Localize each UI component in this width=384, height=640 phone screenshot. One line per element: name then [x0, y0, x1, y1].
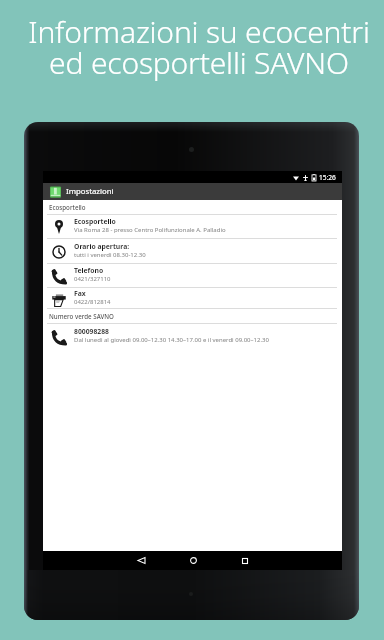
button[interactable]: Orario apertura:	[43, 239, 342, 264]
staticText: 0421/327110	[74, 275, 111, 283]
staticText: Dal lunedì al giovedì 09.00–12.30 14.30–…	[74, 336, 269, 344]
button[interactable]: Recent apps	[232, 551, 258, 570]
button[interactable]: Home	[180, 551, 206, 570]
button[interactable]: Fax	[43, 288, 342, 309]
staticText: Telefono	[74, 266, 104, 275]
staticText: Ecosportello	[49, 203, 86, 211]
staticText: Via Roma 28 - presso Centro Polifunziona…	[74, 226, 226, 234]
staticText: Numero verde SAVNO	[49, 312, 114, 320]
staticText: Fax	[74, 289, 86, 298]
button[interactable]: Telefono	[43, 264, 342, 288]
staticText: Impostazioni	[66, 186, 114, 197]
button[interactable]: Impostazioni	[43, 183, 342, 200]
button[interactable]: Ecosportello	[43, 215, 342, 239]
staticText: Orario apertura:	[74, 242, 130, 251]
button[interactable]: 800098288	[43, 324, 342, 348]
staticText: 800098288	[74, 327, 109, 336]
staticText: 0422/812814	[74, 298, 111, 306]
button[interactable]: Back	[128, 551, 154, 570]
staticText: 15:26	[319, 173, 336, 182]
staticText: Ecosportello	[74, 217, 116, 226]
staticText: tutti i venerdì 08.30-12.30	[74, 251, 146, 259]
staticText: Informazioni su ecocentri ed ecosportell…	[14, 11, 384, 82]
